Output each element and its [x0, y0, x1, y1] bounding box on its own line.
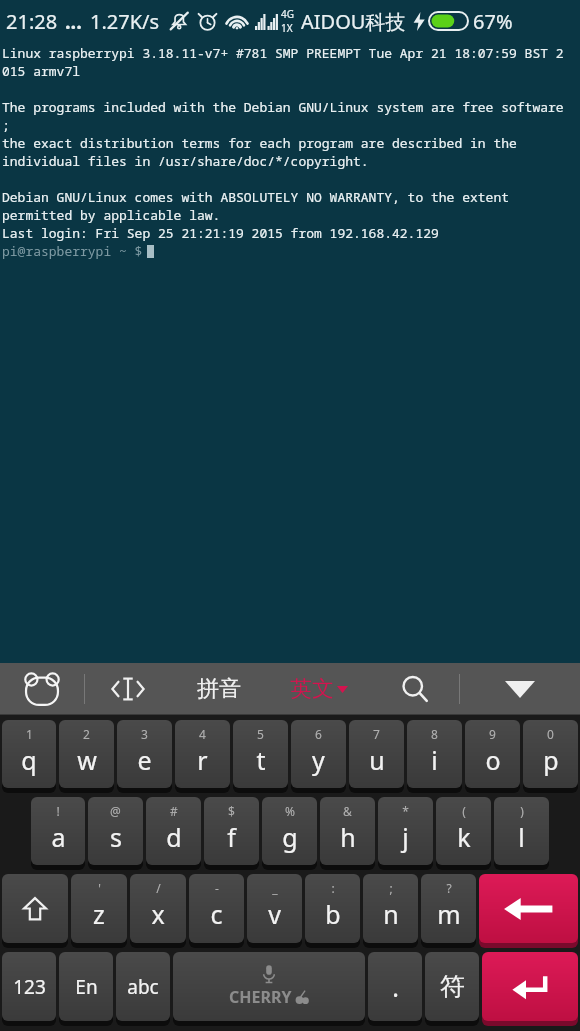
staticText: permitted by applicable law.	[2, 206, 221, 224]
staticText: q	[21, 743, 37, 777]
button[interactable]: 4	[175, 720, 230, 788]
staticText: @	[110, 803, 121, 819]
staticText: ;	[389, 880, 393, 896]
button[interactable]: :	[305, 874, 360, 943]
button[interactable]: )	[494, 797, 549, 865]
staticText: 6	[315, 726, 322, 742]
button[interactable]: #	[146, 797, 201, 865]
staticText: abc	[127, 974, 159, 1000]
staticText: Debian GNU/Linux comes with ABSOLUTELY N…	[2, 188, 509, 206]
button[interactable]: _	[247, 874, 302, 943]
button[interactable]: !	[31, 797, 85, 865]
button[interactable]: &	[320, 797, 375, 865]
button[interactable]: $	[204, 797, 259, 865]
staticText: 8	[431, 726, 438, 742]
staticText: 015 armv7l	[2, 62, 81, 80]
staticText: (	[462, 803, 466, 819]
button[interactable]: 8	[407, 720, 462, 788]
button[interactable]: -	[189, 874, 244, 943]
button[interactable]: 0	[523, 720, 578, 788]
button[interactable]: 3	[117, 720, 172, 788]
button[interactable]: Space	[173, 952, 365, 1021]
button[interactable]: /	[130, 874, 186, 943]
staticText: The programs included with the Debian GN…	[2, 98, 564, 116]
staticText: CHERRY	[229, 986, 292, 1008]
staticText: 3	[141, 726, 148, 742]
staticText: ;	[2, 116, 10, 134]
button[interactable]: Search	[371, 663, 459, 715]
staticText: -	[215, 880, 219, 896]
staticText: 符	[440, 971, 465, 1002]
staticText: 7	[373, 726, 380, 742]
button[interactable]: Enter	[482, 952, 578, 1021]
staticText: 英文	[290, 675, 334, 703]
staticText: ?	[446, 880, 452, 896]
staticText: '	[98, 880, 101, 896]
staticText: 1	[26, 726, 33, 742]
button[interactable]: Shift	[2, 874, 68, 943]
staticText: 4G	[281, 7, 294, 21]
button[interactable]: 2	[59, 720, 114, 788]
button[interactable]: Baidu input method	[0, 663, 84, 715]
staticText: b	[325, 897, 341, 931]
staticText: 1.27K/s	[90, 8, 160, 35]
button[interactable]: 6	[291, 720, 346, 788]
staticText: r	[197, 743, 208, 777]
staticText: p	[543, 743, 559, 777]
staticText: t	[256, 743, 266, 777]
staticText: 1X	[281, 21, 293, 35]
staticText: w	[77, 743, 97, 777]
button[interactable]: ;	[363, 874, 418, 943]
staticText: individual files in /usr/share/doc/*/cop…	[2, 152, 369, 170]
staticText: 67%	[473, 8, 513, 35]
staticText: a	[51, 820, 66, 854]
staticText: ...	[65, 8, 82, 35]
staticText: v	[268, 897, 281, 931]
button[interactable]: 7	[349, 720, 404, 788]
staticText: %	[285, 803, 295, 819]
staticText: 拼音	[197, 675, 241, 703]
staticText: 5	[257, 726, 264, 742]
staticText: k	[457, 820, 471, 854]
staticText: _	[272, 880, 278, 896]
button[interactable]: 符	[425, 952, 479, 1021]
button[interactable]: 5	[233, 720, 288, 788]
button[interactable]: ?	[421, 874, 476, 943]
staticText: &	[343, 803, 352, 819]
button[interactable]: abc	[116, 952, 170, 1021]
staticText: o	[485, 743, 501, 777]
staticText: En	[75, 974, 98, 1000]
button[interactable]: Cursor move	[85, 663, 171, 715]
button[interactable]: 123	[2, 952, 56, 1021]
button[interactable]: 英文	[267, 663, 371, 715]
staticText: $	[228, 803, 235, 819]
button[interactable]: .	[368, 952, 422, 1021]
staticText: n	[383, 897, 399, 931]
staticText: u	[369, 743, 385, 777]
button[interactable]: Hide keyboard	[460, 663, 580, 715]
staticText: y	[312, 743, 325, 777]
button[interactable]: @	[88, 797, 143, 865]
button[interactable]: En	[59, 952, 113, 1021]
button[interactable]: 拼音	[171, 663, 267, 715]
staticText: m	[437, 897, 461, 931]
button[interactable]: (	[436, 797, 491, 865]
button[interactable]: Backspace	[479, 874, 578, 943]
button[interactable]: '	[71, 874, 127, 943]
button[interactable]: 9	[465, 720, 520, 788]
button[interactable]: *	[378, 797, 433, 865]
staticText: AIDOU科技	[301, 8, 406, 35]
staticText: /	[156, 880, 161, 896]
button[interactable]: 1	[2, 720, 56, 788]
staticText: 4	[199, 726, 206, 742]
staticText: j	[402, 820, 409, 854]
button[interactable]: %	[262, 797, 317, 865]
staticText: z	[93, 897, 105, 931]
staticText: )	[520, 803, 524, 819]
staticText: x	[151, 897, 165, 931]
staticText: e	[137, 743, 152, 777]
staticText: :	[331, 880, 335, 896]
staticText: the exact distribution terms for each pr…	[2, 134, 517, 152]
staticText: .	[392, 970, 399, 1004]
